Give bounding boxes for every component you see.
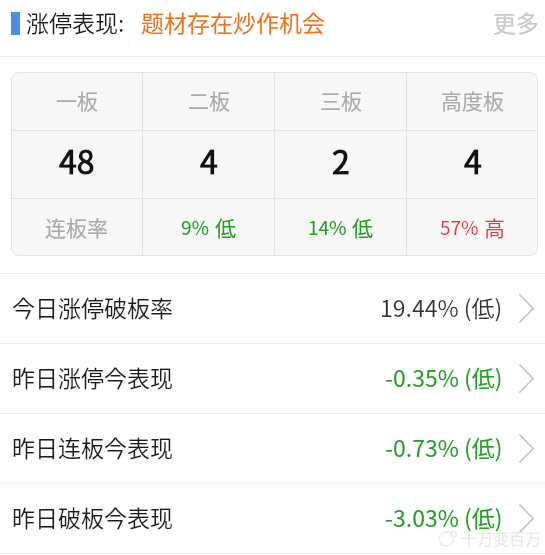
staticText: 高 — [484, 212, 505, 242]
staticText: 4 — [464, 137, 482, 183]
staticText: 涨停表现: — [26, 5, 125, 38]
staticText: 9% — [181, 213, 210, 241]
staticText: 三板 — [320, 85, 362, 115]
staticText: -0.73% (低) — [385, 430, 503, 463]
staticText: 昨日连板今表现 — [12, 430, 173, 463]
button[interactable]: 48 — [11, 131, 142, 198]
staticText: 57% — [440, 213, 479, 241]
button[interactable]: 二板 — [143, 72, 274, 130]
staticText: 2 — [332, 137, 350, 183]
staticText: 题材存在炒作机会 — [141, 5, 325, 38]
staticText: 昨日涨停今表现 — [12, 360, 173, 393]
button[interactable]: 2 — [275, 131, 406, 198]
staticText: 十万变百万 — [461, 526, 542, 549]
staticText: 一板 — [56, 85, 98, 115]
button[interactable]: 高度板 — [407, 72, 538, 130]
staticText: 48 — [59, 137, 95, 183]
button[interactable]: 更多 — [479, 12, 545, 56]
staticText: 4 — [200, 137, 218, 183]
button[interactable]: 14% — [275, 199, 406, 256]
staticText: 低 — [215, 212, 236, 242]
staticText: 昨日破板今表现 — [12, 500, 173, 533]
button[interactable]: 一板 — [11, 72, 142, 130]
staticText: 二板 — [188, 85, 230, 115]
staticText: 更多 — [493, 5, 539, 38]
button[interactable]: 4 — [143, 131, 274, 198]
button[interactable]: 昨日涨停今表现 — [0, 344, 545, 413]
other: Open details — [519, 434, 534, 463]
staticText: 今日涨停破板率 — [12, 290, 173, 323]
button[interactable]: 今日涨停破板率 — [0, 274, 545, 343]
button[interactable]: 9% — [143, 199, 274, 256]
button[interactable]: 57% — [407, 199, 538, 256]
staticText: -0.35% (低) — [385, 360, 503, 393]
staticText: 14% — [308, 213, 347, 241]
other: Open details — [519, 504, 534, 533]
button[interactable]: 4 — [407, 131, 538, 198]
other: Open details — [519, 294, 534, 323]
other: Open details — [519, 364, 534, 393]
button[interactable]: 昨日破板今表现 — [0, 484, 545, 553]
staticText: -3.03% (低) — [385, 500, 503, 533]
button[interactable]: 昨日连板今表现 — [0, 414, 545, 483]
staticText: 连板率 — [45, 212, 108, 242]
button[interactable]: 三板 — [275, 72, 406, 130]
staticText: 19.44% (低) — [380, 290, 503, 323]
staticText: 高度板 — [441, 85, 504, 115]
button[interactable]: 连板率 — [11, 199, 142, 256]
staticText: 低 — [352, 212, 373, 242]
